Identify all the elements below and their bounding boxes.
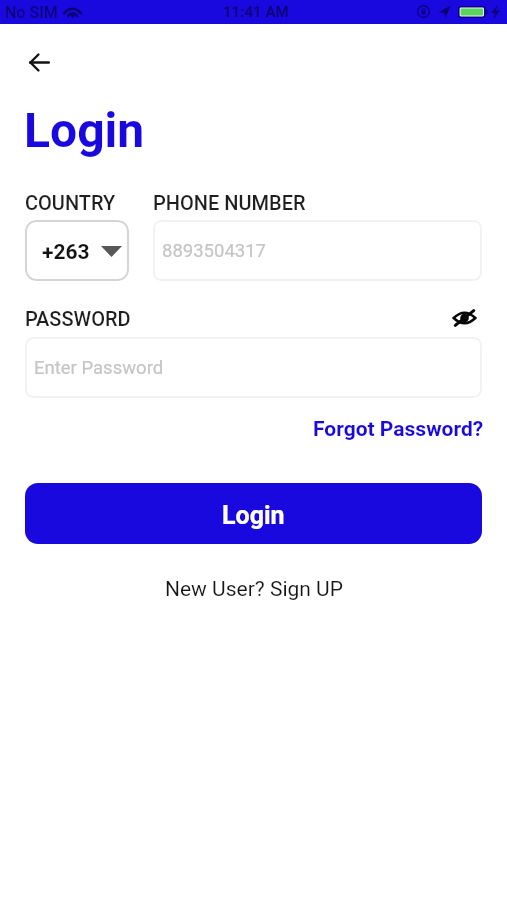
button[interactable]: Login [25, 483, 482, 544]
staticText: Enter Password [34, 357, 164, 379]
staticText: COUNTRY [25, 191, 116, 214]
button[interactable]: New User? Sign UP [165, 577, 343, 602]
staticText: Login [222, 501, 285, 530]
staticText: Forgot Password? [313, 417, 484, 442]
staticText: PHONE NUMBER [153, 191, 306, 214]
staticText: Login [24, 102, 145, 158]
staticText: +263 [42, 240, 90, 265]
button[interactable]: Back [18, 41, 61, 84]
button[interactable]: Show password [448, 302, 480, 334]
staticText: No SIM [5, 3, 58, 22]
button[interactable]: Forgot Password? [313, 417, 484, 442]
button[interactable]: 8893504317 [153, 220, 482, 281]
button[interactable]: +263 [25, 220, 129, 281]
button[interactable]: Enter Password [25, 337, 482, 398]
staticText: 8893504317 [162, 240, 266, 262]
staticText: PASSWORD [25, 307, 131, 330]
staticText: 11:41 AM [223, 3, 289, 21]
